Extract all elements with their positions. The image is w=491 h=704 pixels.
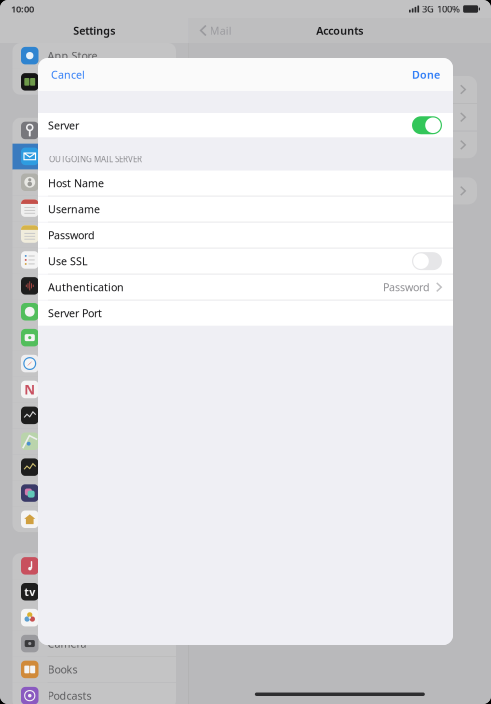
- staticText: OUTGOING MAIL SERVER: [49, 154, 142, 164]
- button[interactable]: Stocks: [12, 403, 176, 429]
- button[interactable]: N: [12, 377, 176, 403]
- button[interactable]: Calendar: [12, 195, 176, 221]
- staticText: Use SSL: [48, 254, 88, 268]
- staticText: iCloud: [215, 82, 248, 97]
- button[interactable]: App Store: [12, 43, 176, 69]
- staticText: Voice Memos: [47, 279, 113, 293]
- staticText: Gmail: [215, 110, 245, 124]
- button[interactable]: Mail: [12, 144, 176, 170]
- staticText: 100%: [437, 3, 460, 15]
- button[interactable]: Books: [12, 657, 176, 683]
- staticText: Fetch New Data: [215, 184, 295, 198]
- button[interactable]: Shortcuts: [12, 480, 176, 506]
- button[interactable]: Host Name: [38, 170, 453, 196]
- button[interactable]: Password: [38, 222, 453, 248]
- staticText: Accounts: [316, 23, 363, 38]
- staticText: Username: [48, 202, 100, 216]
- button[interactable]: Home: [12, 506, 176, 532]
- button[interactable]: Cancel: [49, 59, 87, 90]
- staticText: Settings: [73, 23, 115, 38]
- staticText: Camera: [47, 636, 86, 651]
- button[interactable]: Wallet: [12, 69, 176, 95]
- staticText: Notes: [47, 227, 76, 241]
- staticText: 10:00: [11, 3, 34, 15]
- button[interactable]: Server: [38, 113, 453, 137]
- button[interactable]: Notes: [12, 221, 176, 247]
- button[interactable]: FaceTime: [12, 325, 176, 351]
- staticText: Authentication: [48, 280, 124, 294]
- staticText: tv: [24, 585, 35, 599]
- button[interactable]: Translate: [12, 454, 176, 480]
- staticText: Podcasts: [47, 689, 91, 703]
- button[interactable]: Contacts: [12, 170, 176, 195]
- staticText: Password: [48, 228, 95, 242]
- button[interactable]: Photos: [12, 605, 176, 631]
- button[interactable]: Mail: [189, 18, 232, 43]
- button[interactable]: Camera: [12, 631, 176, 657]
- staticText: Reminders: [47, 253, 102, 267]
- staticText: 3G: [422, 3, 434, 15]
- button[interactable]: tv: [12, 579, 176, 605]
- button[interactable]: Maps: [12, 429, 176, 454]
- staticText: Contacts: [47, 175, 91, 189]
- staticText: Calendar: [47, 201, 93, 215]
- staticText: Books: [47, 662, 77, 677]
- staticText: Host Name: [48, 176, 104, 190]
- button[interactable]: Messages: [12, 299, 176, 325]
- button[interactable]: Safari: [12, 351, 176, 377]
- staticText: Cancel: [51, 67, 85, 82]
- staticText: Passwords: [47, 123, 99, 138]
- staticText: App Store: [47, 49, 97, 63]
- button[interactable]: Authentication: [38, 274, 453, 300]
- staticText: Mail: [47, 149, 69, 163]
- staticText: Messages: [47, 305, 97, 319]
- button[interactable]: Use SSL: [38, 248, 453, 274]
- staticText: Server: [48, 118, 79, 132]
- staticText: Server Port: [48, 306, 102, 320]
- button[interactable]: Voice Memos: [12, 273, 176, 299]
- button[interactable]: Music: [12, 553, 176, 579]
- button[interactable]: Username: [38, 196, 453, 222]
- button[interactable]: Podcasts: [12, 683, 176, 704]
- staticText: Password: [383, 280, 430, 294]
- button[interactable]: Reminders: [12, 247, 176, 273]
- staticText: Wallet: [47, 75, 79, 89]
- button[interactable]: Done: [410, 59, 442, 90]
- staticText: Mail: [210, 23, 232, 38]
- staticText: N: [24, 381, 35, 398]
- button[interactable]: Passwords: [12, 118, 176, 144]
- staticText: Done: [412, 67, 440, 82]
- button[interactable]: Server Port: [38, 300, 453, 326]
